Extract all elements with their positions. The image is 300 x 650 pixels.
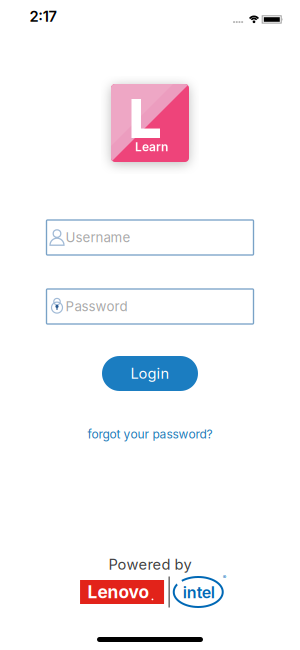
staticText: Lenovo [88,582,150,602]
staticText: Username [65,230,130,245]
staticText: Learn [135,140,168,154]
button[interactable]: forgot your password? [87,427,212,441]
button[interactable]: Username [46,220,253,255]
staticText: ® [223,574,227,580]
staticText: forgot your password? [87,427,212,441]
button[interactable]: Login [102,356,198,391]
staticText: Login [130,365,169,382]
staticText: Powered by [108,556,191,573]
staticText: intel [183,583,215,602]
staticText: 2:17 [29,8,56,25]
button[interactable]: Password [46,289,253,324]
staticText: Password [65,299,127,314]
